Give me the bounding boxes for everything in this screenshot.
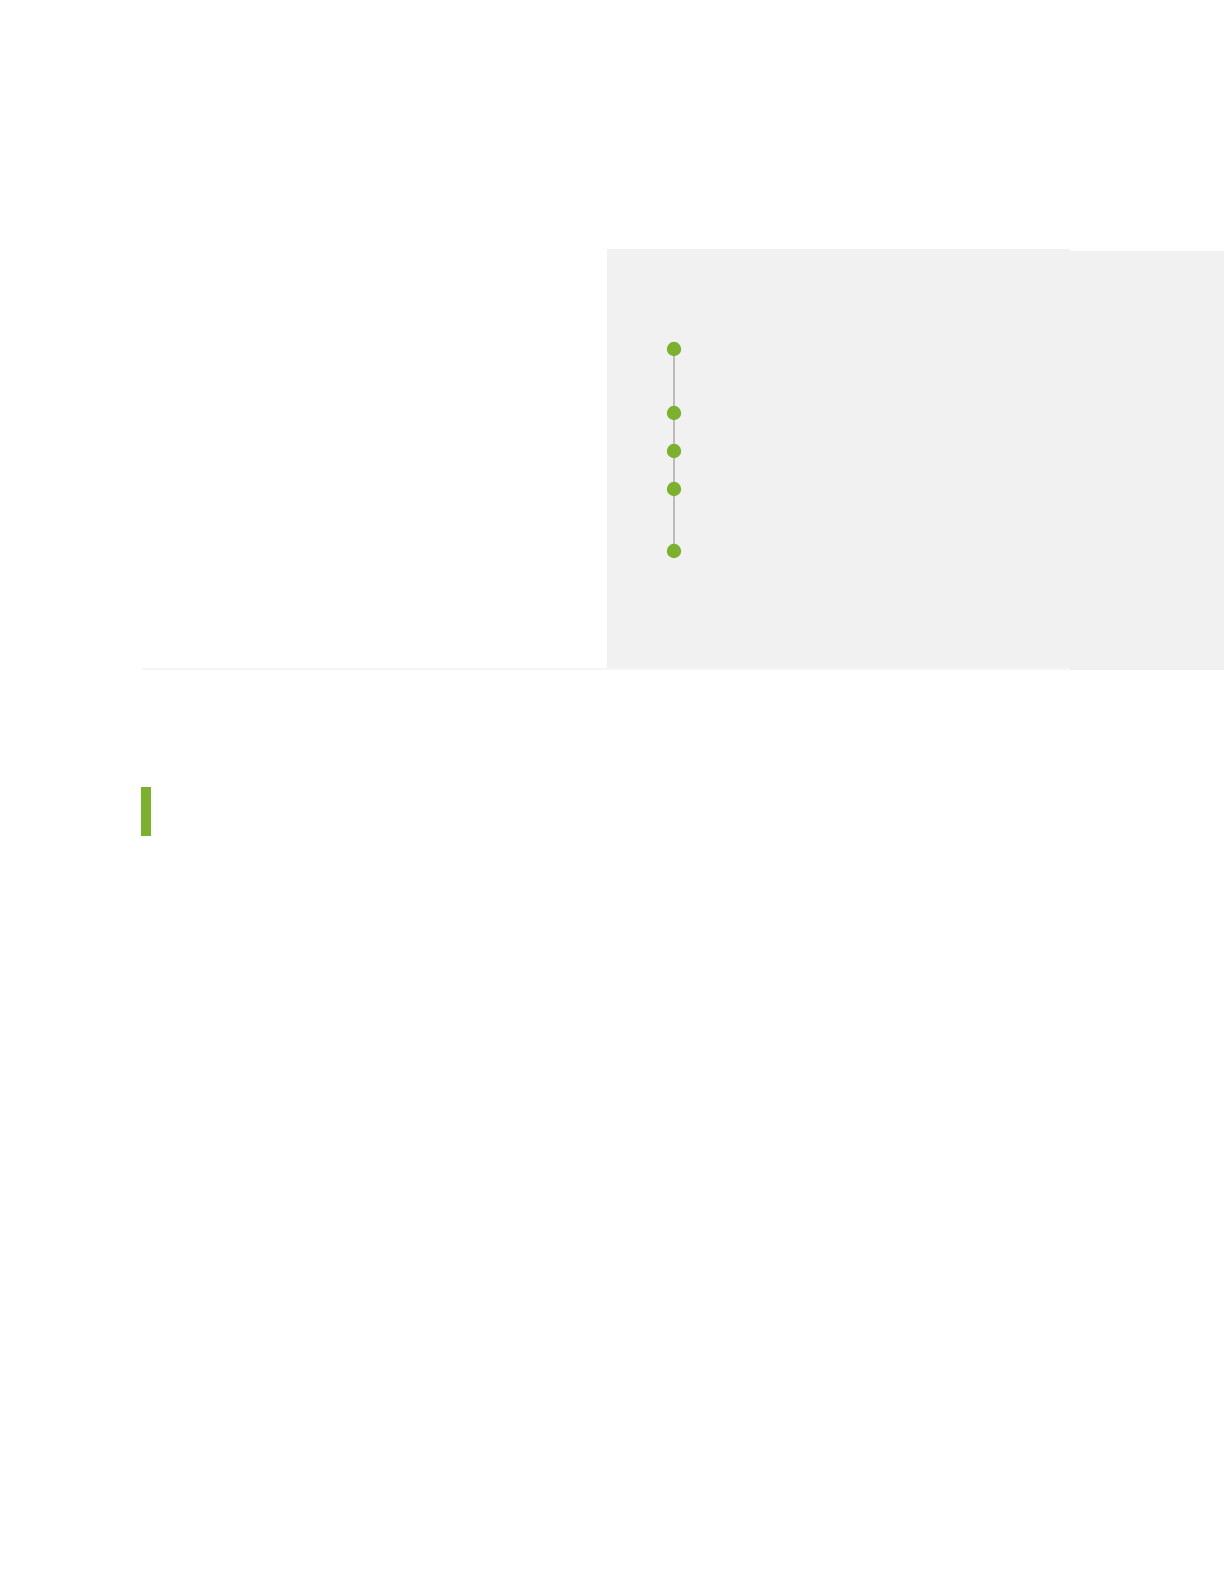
button[interactable]: Progress timeline with five steps [660, 335, 688, 567]
button[interactable]: Timeline pane [607, 249, 1224, 670]
